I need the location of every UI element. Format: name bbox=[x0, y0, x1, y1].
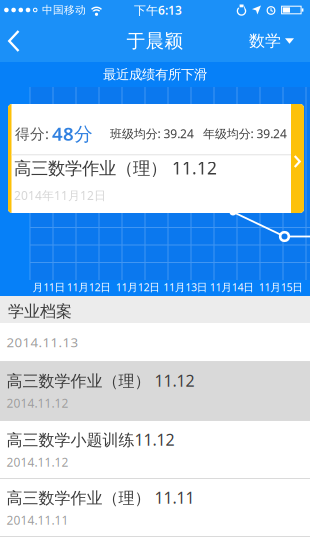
staticText: 年级均分: 39.24 bbox=[203, 126, 287, 141]
staticText: 11月14日 bbox=[210, 280, 254, 294]
button[interactable]: 得分: bbox=[8, 104, 304, 213]
button[interactable]: 选择科目 (Choose subject) bbox=[241, 19, 310, 63]
staticText: 高三数学小题训练11.12 bbox=[6, 429, 174, 450]
staticText: 于晨颖 bbox=[126, 29, 183, 52]
staticText: 2014.11.12 bbox=[6, 454, 68, 470]
staticText: 得分: bbox=[15, 124, 49, 143]
staticText: 高三数学作业（理） 11.12 bbox=[14, 156, 217, 179]
staticText: 48分 bbox=[52, 121, 93, 146]
staticText: 2014.11.11 bbox=[6, 512, 68, 528]
staticText: 2014年11月12日 bbox=[14, 187, 106, 203]
staticText: 数学 bbox=[249, 31, 281, 51]
staticText: 11月12日 bbox=[67, 280, 111, 294]
staticText: 最近成绩有所下滑 bbox=[103, 66, 207, 83]
button[interactable]: 高三数学小题训练11.12 bbox=[0, 421, 310, 478]
button[interactable]: 2014.11.13 bbox=[0, 323, 310, 361]
staticText: 11月12日 bbox=[116, 280, 160, 294]
staticText: 高三数学作业（理） 11.12 bbox=[6, 370, 194, 391]
staticText: 班级均分: 39.24 bbox=[110, 126, 194, 141]
staticText: 2014.11.13 bbox=[6, 333, 78, 351]
staticText: 11月15日 bbox=[259, 280, 303, 294]
staticText: 学业档案 bbox=[8, 302, 72, 321]
button[interactable]: 高三数学作业（理） 11.12 bbox=[0, 362, 310, 420]
staticText: 月11日 bbox=[32, 280, 65, 294]
staticText: 11月13日 bbox=[163, 280, 208, 294]
staticText: 2014.11.12 bbox=[6, 395, 68, 411]
staticText: 中国移动 bbox=[42, 3, 86, 16]
button[interactable]: Back bbox=[0, 21, 30, 61]
staticText: 高三数学作业（理） 11.11 bbox=[6, 487, 194, 508]
button[interactable]: 高三数学作业（理） 11.11 bbox=[0, 479, 310, 536]
staticText: 下午6:13 bbox=[134, 2, 182, 18]
